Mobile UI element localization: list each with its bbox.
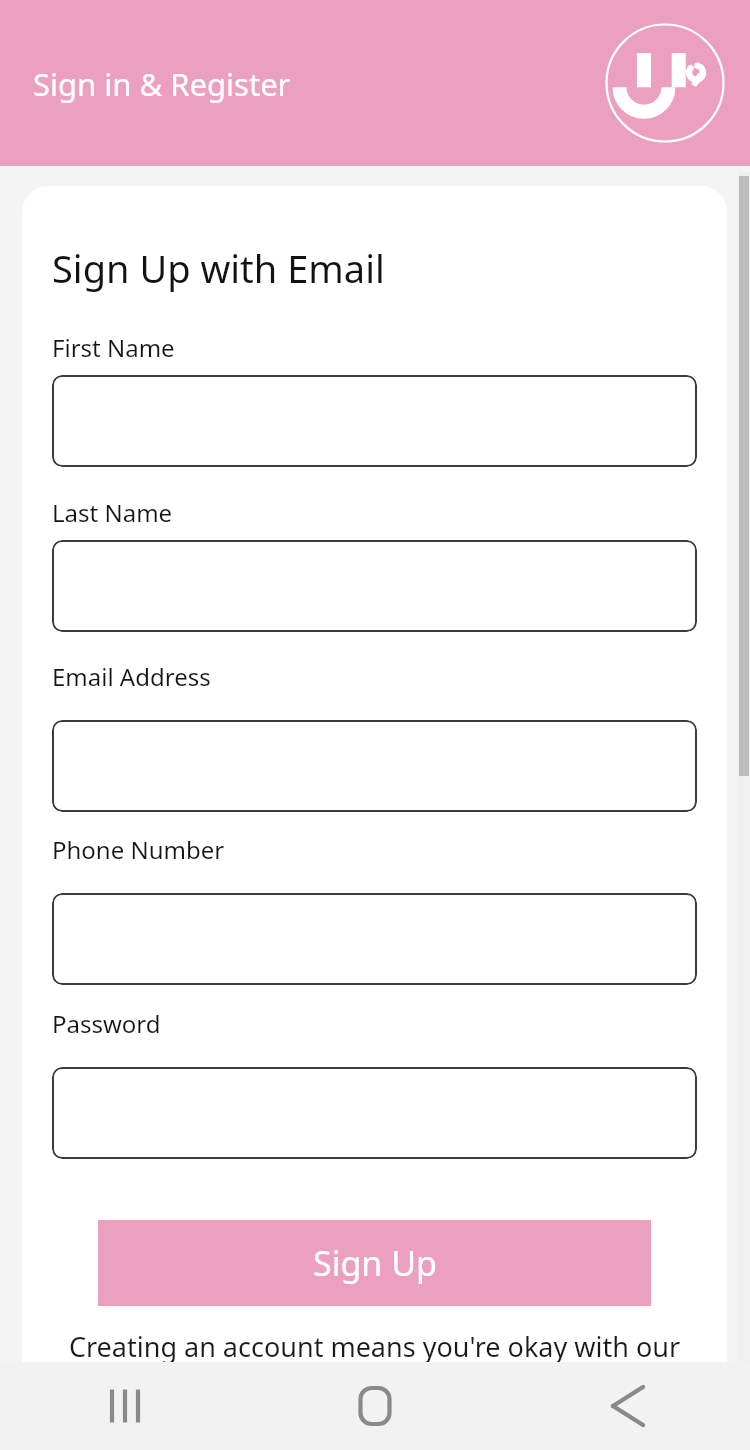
button[interactable]: App logo bbox=[604, 22, 726, 144]
button[interactable]: Home bbox=[250, 1362, 500, 1450]
button[interactable]: Recent apps bbox=[0, 1362, 250, 1450]
button[interactable] bbox=[52, 893, 697, 985]
staticText: Sign Up with Email bbox=[52, 242, 385, 294]
button[interactable] bbox=[52, 720, 697, 812]
staticText: First Name bbox=[52, 331, 175, 364]
staticText: Last Name bbox=[52, 496, 173, 529]
staticText: Creating an account means you're okay wi… bbox=[52, 1328, 697, 1362]
button[interactable]: Back bbox=[500, 1362, 750, 1450]
staticText: Phone Number bbox=[52, 833, 225, 866]
staticText: Sign in & Register bbox=[33, 63, 291, 105]
button[interactable] bbox=[52, 375, 697, 467]
button[interactable] bbox=[52, 540, 697, 632]
button[interactable]: Sign Up bbox=[98, 1220, 651, 1306]
staticText: Password bbox=[52, 1007, 161, 1040]
staticText: Email Address bbox=[52, 660, 211, 693]
staticText: Sign Up bbox=[313, 1240, 437, 1286]
button[interactable] bbox=[52, 1067, 697, 1159]
